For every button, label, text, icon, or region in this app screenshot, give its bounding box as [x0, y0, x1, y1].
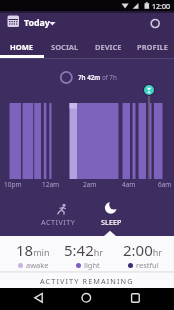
staticText: 10pm [4, 180, 22, 189]
staticText: 2am [83, 180, 97, 189]
staticText: awake [26, 260, 49, 270]
button[interactable]: SLEEP [83, 190, 139, 236]
staticText: Today [24, 17, 50, 29]
staticText: light [84, 260, 100, 270]
staticText: 4am [122, 180, 136, 189]
button[interactable]: Today [22, 16, 60, 30]
staticText: 6am [158, 180, 172, 189]
button[interactable]: DEVICE [86, 33, 130, 58]
staticText: SLEEP [101, 217, 122, 227]
button[interactable] [58, 288, 116, 310]
staticText: DEVICE [95, 42, 122, 52]
button[interactable] [116, 288, 174, 310]
button[interactable]: HOME [0, 33, 43, 58]
button[interactable]: ACTIVITY REMAINING [0, 276, 174, 286]
staticText: SOCIAL [51, 42, 79, 52]
staticText: 7h 42m of 7h [78, 73, 117, 81]
staticText: restful [136, 260, 159, 270]
button[interactable] [0, 288, 58, 310]
staticText: HOME [10, 42, 33, 52]
staticText: PROFILE [137, 42, 168, 52]
staticText: 12:00 [152, 2, 170, 12]
staticText: ACTIVITY REMAINING [40, 276, 134, 286]
staticText: 12am [42, 180, 60, 189]
button[interactable] [145, 13, 165, 33]
staticText: 5:42hr [64, 240, 104, 260]
button[interactable]: SOCIAL [43, 33, 86, 58]
staticText: 18min [16, 240, 50, 260]
staticText: ACTIVITY [41, 217, 76, 227]
staticText: 2:00hr [123, 240, 163, 260]
button[interactable]: ACTIVITY [30, 190, 86, 236]
button[interactable]: PROFILE [130, 33, 174, 58]
